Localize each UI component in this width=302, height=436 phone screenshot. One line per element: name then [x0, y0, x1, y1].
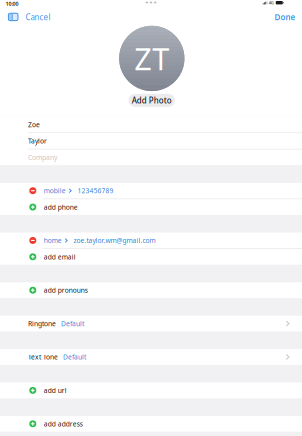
staticText: add phone [44, 203, 78, 211]
staticText: Zoe [28, 120, 40, 129]
staticText: add pronouns [44, 286, 88, 295]
button[interactable]: mobile [0, 183, 302, 199]
staticText: 4G [269, 0, 274, 5]
staticText: Done [274, 12, 295, 22]
staticText: Taylor [28, 136, 47, 145]
staticText: add email [44, 252, 76, 261]
staticText: Company [28, 153, 57, 162]
staticText: Add Photo [132, 95, 172, 106]
staticText: ZT [134, 38, 169, 79]
staticText: Cancel [25, 12, 50, 22]
button[interactable]: Done [274, 11, 295, 22]
button[interactable]: Add Photo [129, 94, 175, 107]
staticText: add url [44, 386, 67, 395]
staticText: Ringtone [28, 319, 56, 328]
button[interactable]: Ringtone [0, 316, 302, 331]
staticText: Default [61, 319, 84, 328]
staticText: mobile [44, 186, 66, 195]
staticText: 10:00 [5, 0, 18, 7]
staticText: Text Tone [28, 353, 58, 361]
staticText: Default [63, 353, 86, 361]
button[interactable]: add phone [0, 199, 302, 215]
button[interactable]: Cancel [25, 11, 50, 22]
button[interactable]: Text Tone [0, 349, 302, 365]
button[interactable]: Show Sidebar [7, 11, 20, 22]
staticText: 123456789 [77, 186, 113, 195]
button[interactable]: add address [0, 416, 302, 432]
button[interactable]: add email [0, 249, 302, 265]
button[interactable]: home [0, 233, 302, 248]
staticText: home [44, 236, 62, 245]
staticText: zoe.taylor.wm@gmail.com [73, 236, 155, 245]
button[interactable]: add url [0, 382, 302, 398]
button[interactable]: add pronouns [0, 282, 302, 298]
staticText: add address [44, 419, 83, 428]
